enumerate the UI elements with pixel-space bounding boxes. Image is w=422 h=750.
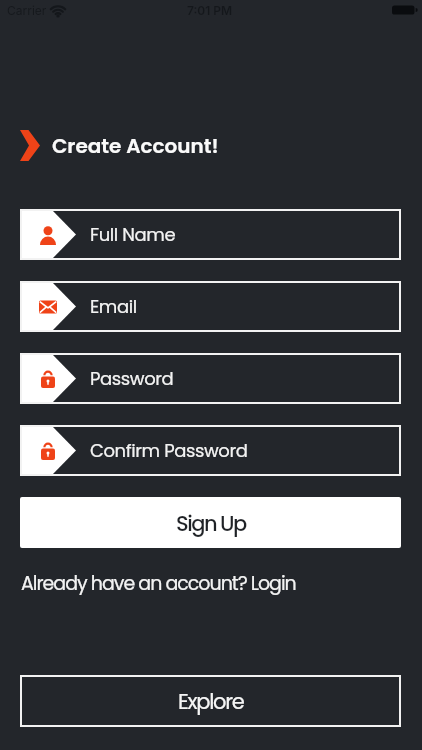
button[interactable]: Email <box>20 281 401 332</box>
staticText: Full Name <box>90 222 176 247</box>
staticText: 7:01 PM <box>187 3 233 18</box>
staticText: Confirm Password <box>90 438 248 463</box>
button[interactable]: Already have an account? Login <box>21 570 296 596</box>
button[interactable]: Explore <box>20 675 401 727</box>
button[interactable]: Sign Up <box>20 497 401 548</box>
staticText: Already have an account? Login <box>21 570 296 596</box>
staticText: Sign Up <box>176 509 246 538</box>
staticText: Create Account! <box>52 132 219 160</box>
button[interactable]: Confirm Password <box>20 425 401 476</box>
button[interactable]: Full Name <box>20 209 401 260</box>
staticText: Carrier <box>7 3 47 18</box>
staticText: Email <box>90 294 137 319</box>
staticText: Password <box>90 366 174 391</box>
button[interactable]: Password <box>20 353 401 404</box>
staticText: Explore <box>178 687 244 716</box>
